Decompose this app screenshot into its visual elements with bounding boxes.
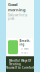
staticText: Good morning bbox=[8, 2, 26, 12]
staticText: Daily wellness picks bbox=[8, 13, 27, 20]
staticText: Mindful Ways Of Treating bbox=[9, 59, 31, 66]
staticText: Breathing bbox=[19, 39, 30, 46]
staticText: 5 min reset bbox=[21, 47, 29, 54]
staticText: Yourself to Comfort bbox=[6, 66, 34, 69]
